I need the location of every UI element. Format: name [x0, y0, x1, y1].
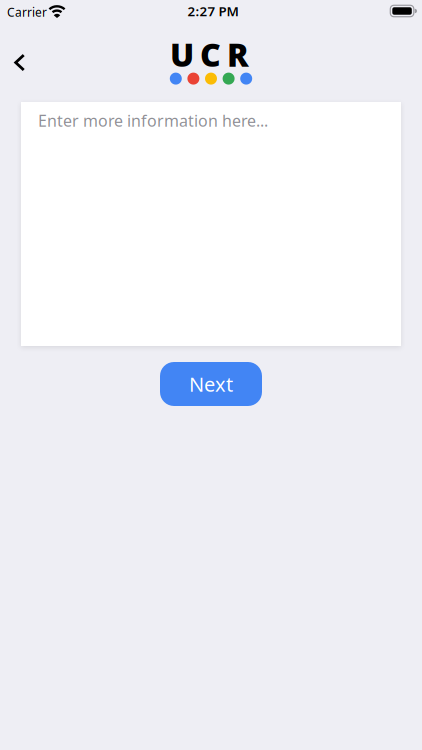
textField[interactable]: Enter more information here... — [38, 110, 384, 131]
button[interactable]: Back — [0, 40, 39, 84]
staticText: Carrier — [7, 4, 47, 20]
staticText: Enter more information here... — [38, 110, 268, 131]
staticText: Next — [189, 371, 233, 397]
staticText: 2:27 PM — [187, 2, 238, 20]
button[interactable]: Next — [160, 362, 262, 406]
staticText: Enter more information here... — [38, 110, 268, 131]
staticText: UCR — [170, 33, 249, 76]
